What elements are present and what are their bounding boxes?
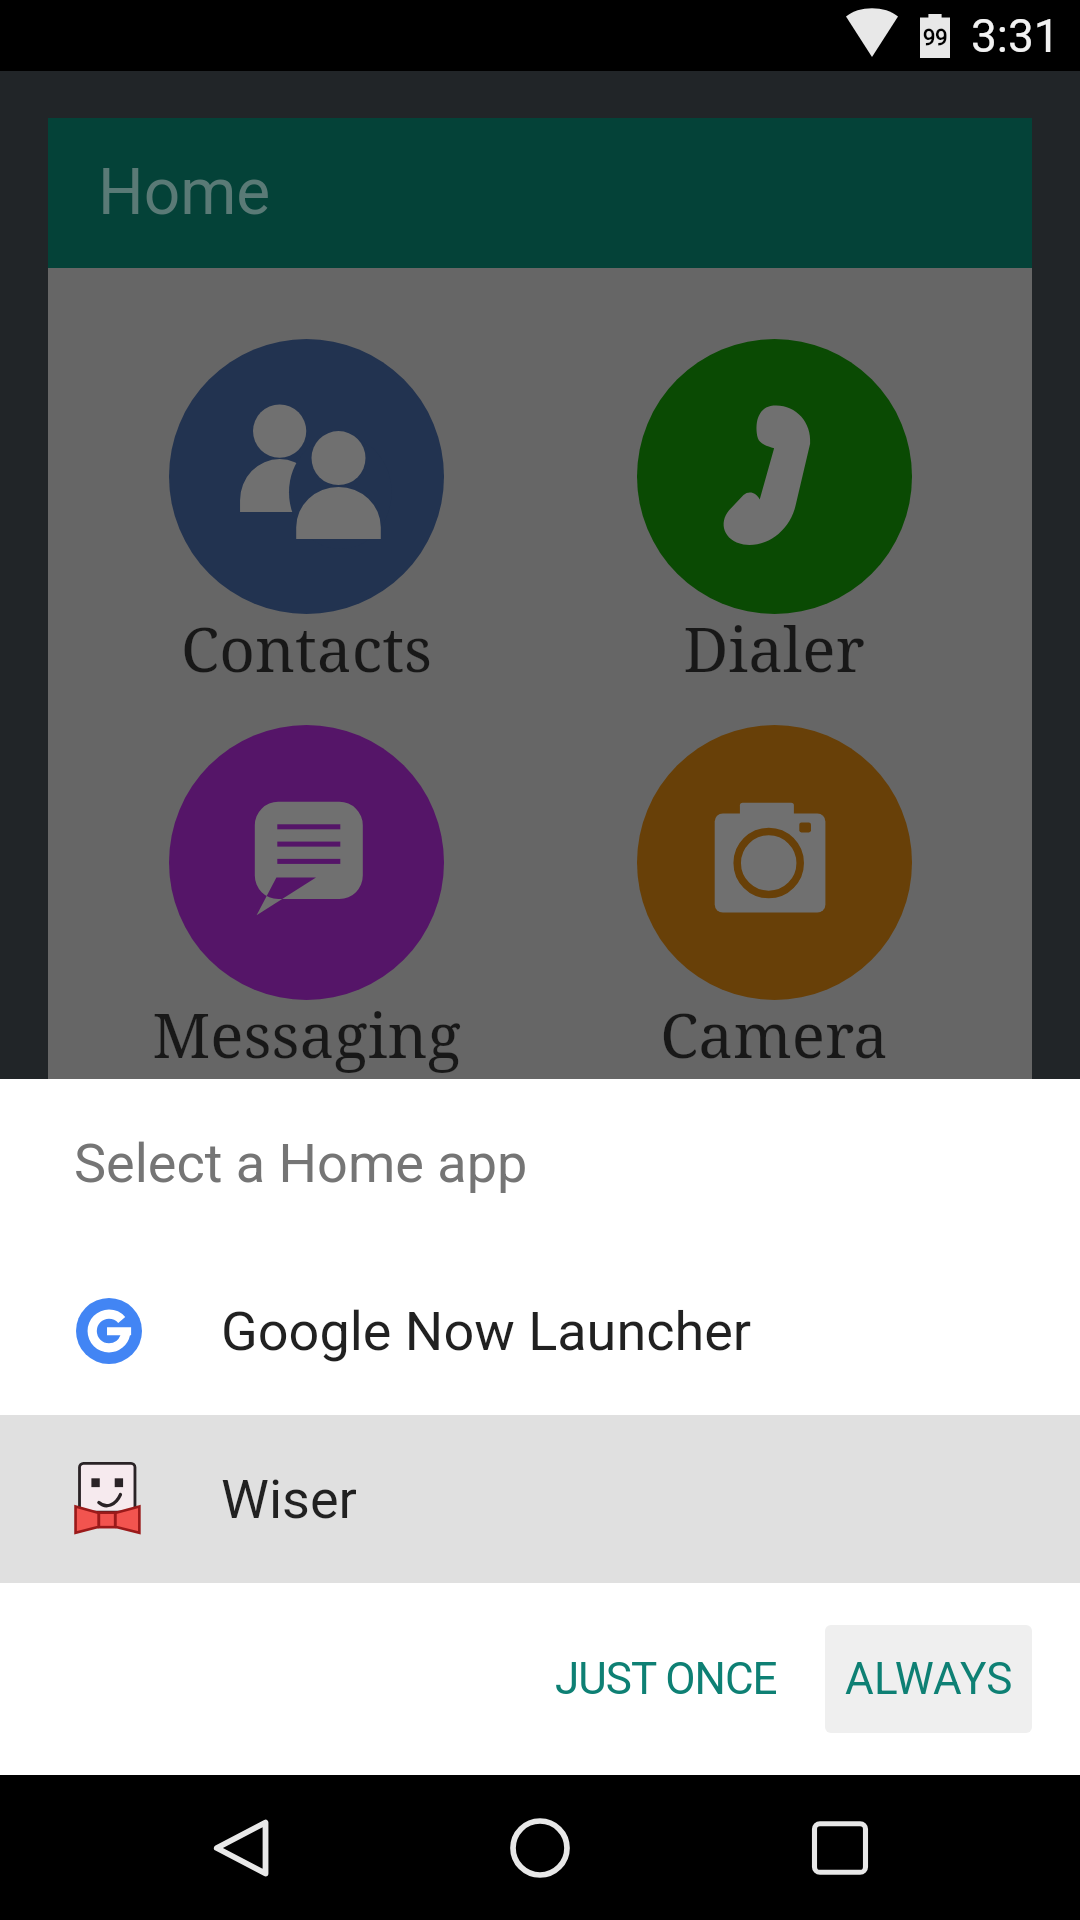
staticText: 3:31 [971,9,1060,63]
button[interactable]: Camera [540,725,1008,1083]
button[interactable]: Google Now Launcher [0,1247,1080,1415]
button[interactable]: Wiser [0,1415,1080,1583]
button[interactable]: Recents [780,1788,900,1908]
staticText: Contacts [181,606,432,690]
staticText: Camera [660,992,888,1076]
button[interactable]: ALWAYS [825,1625,1032,1733]
staticText: JUST ONCE [555,1653,777,1705]
button[interactable]: JUST ONCE [538,1625,793,1733]
staticText: Wiser [221,1468,357,1531]
staticText: Messaging [152,992,461,1076]
button[interactable]: Contacts [72,339,540,698]
button[interactable]: Back [180,1788,300,1908]
staticText: 99 [923,25,948,51]
staticText: Select a Home app [74,1132,528,1195]
button[interactable]: Home [480,1788,600,1908]
staticText: Dialer [683,606,865,690]
staticText: ALWAYS [845,1653,1013,1705]
button[interactable]: Dialer [540,339,1008,698]
staticText: Google Now Launcher [221,1300,752,1363]
staticText: Home [98,155,271,230]
button[interactable]: Messaging [72,725,540,1083]
